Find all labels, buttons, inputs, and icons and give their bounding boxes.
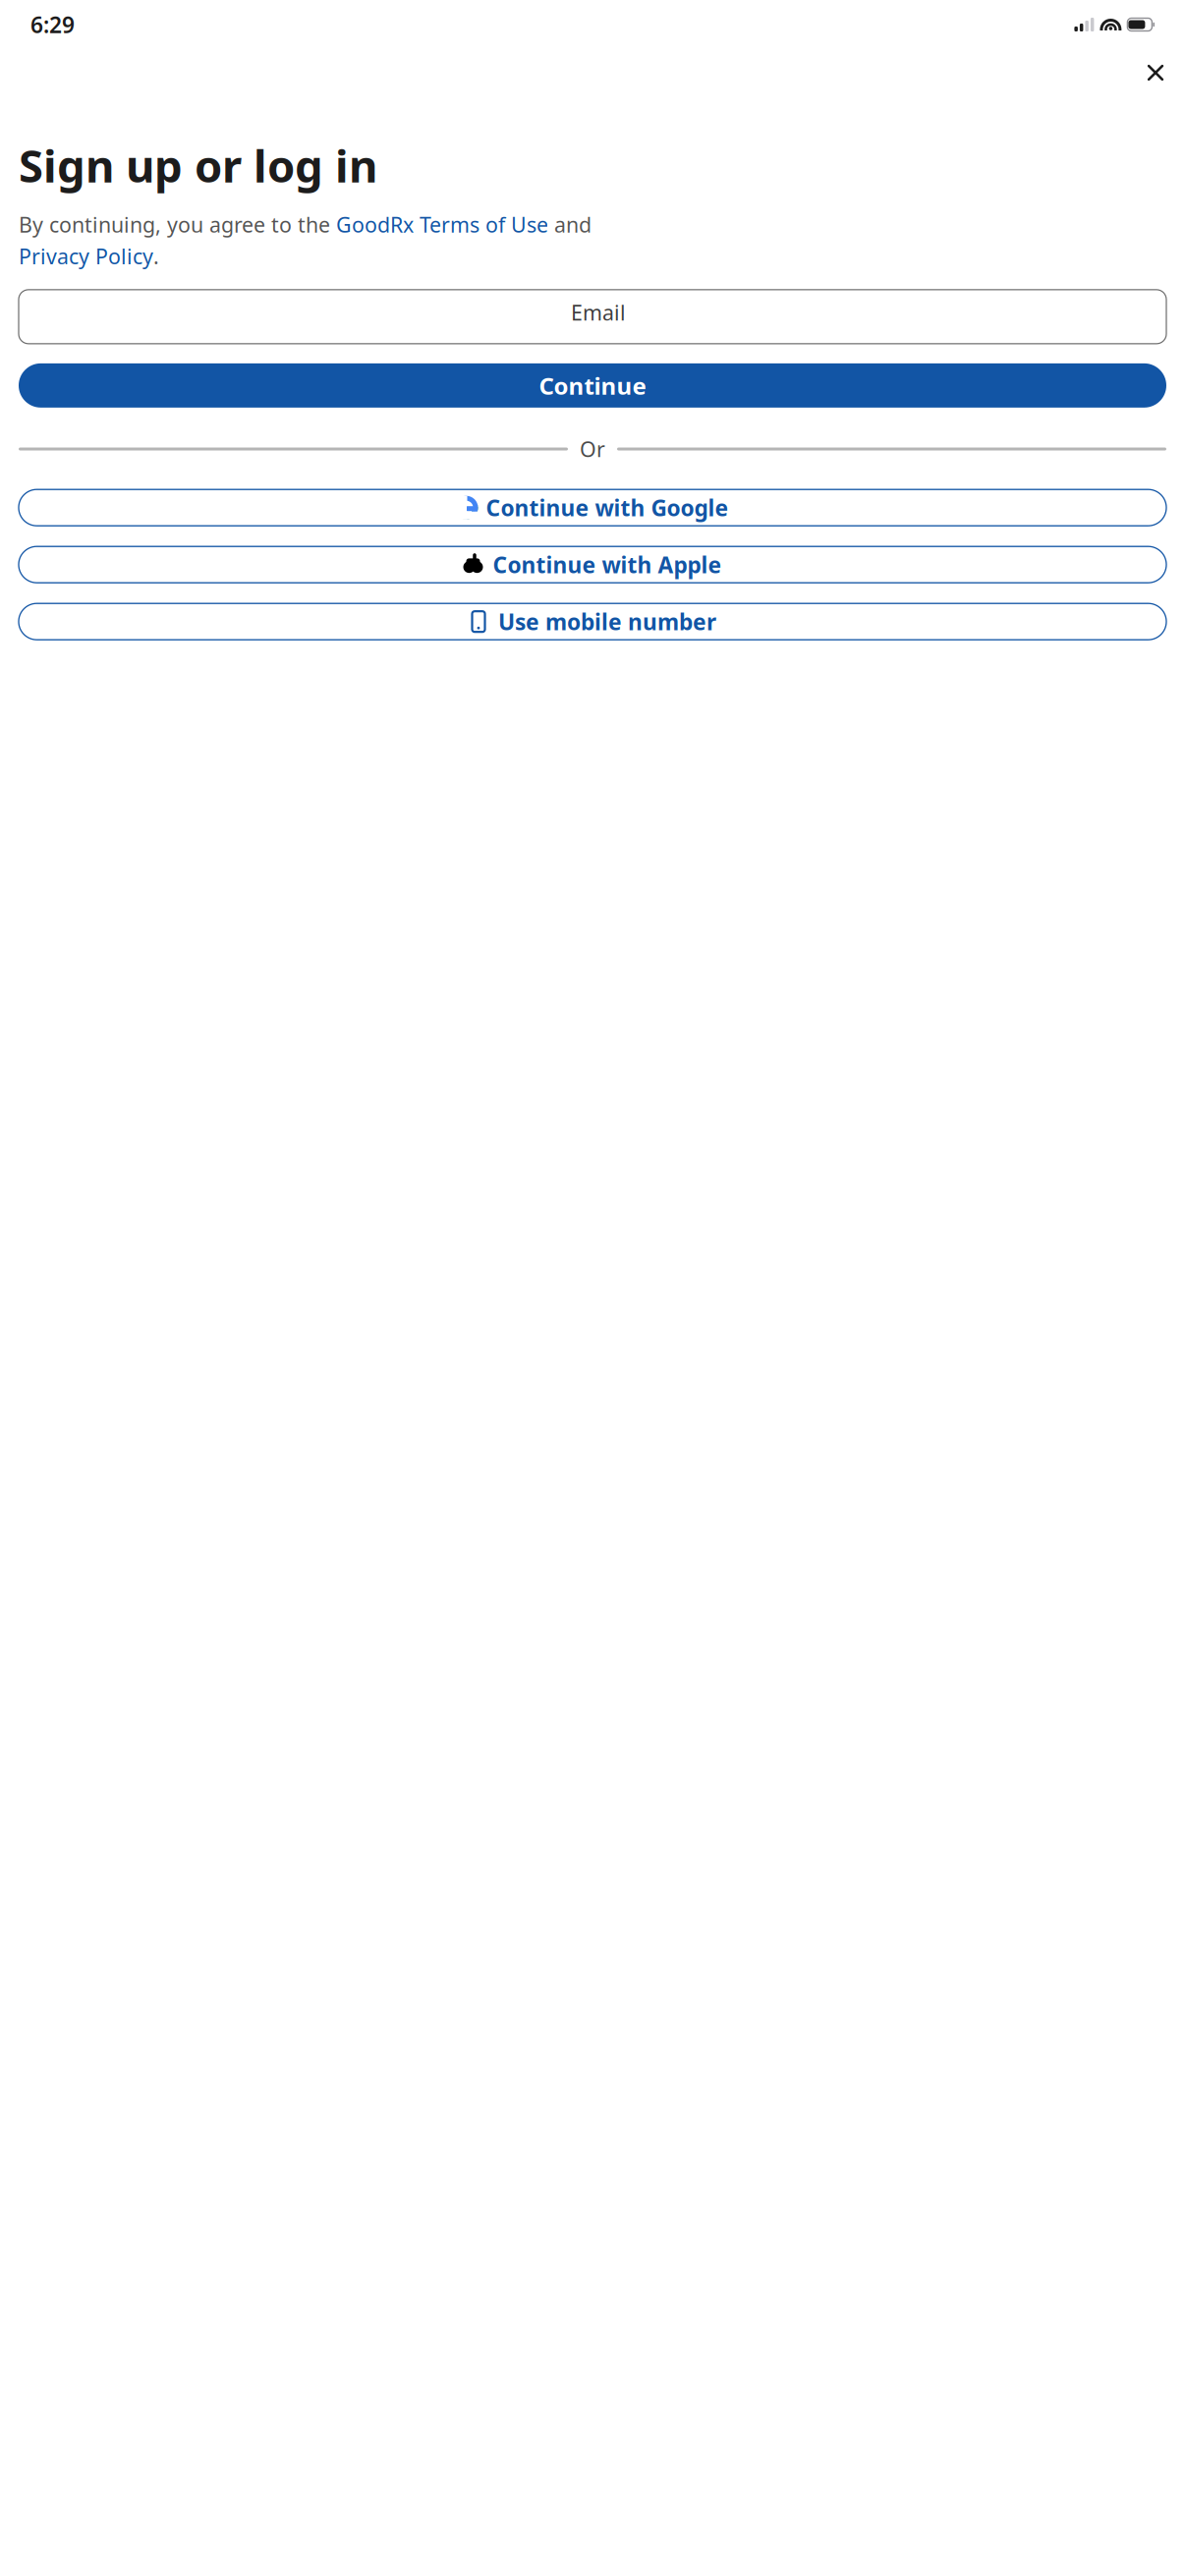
staticText: Or: [580, 435, 605, 463]
button[interactable]: Privacy Policy: [19, 242, 153, 270]
staticText: 6:29: [30, 10, 75, 39]
staticText: .: [153, 242, 159, 270]
staticText: Privacy Policy: [19, 242, 153, 270]
button[interactable]: Email: [19, 290, 1166, 344]
staticText: and: [548, 210, 592, 238]
staticText: Email: [571, 299, 626, 326]
button[interactable]: Continue with Google: [19, 489, 1166, 526]
staticText: Continue: [539, 370, 646, 401]
button[interactable]: Close: [1134, 51, 1177, 94]
staticText: GoodRx Terms of Use: [336, 210, 548, 238]
button[interactable]: Use mobile number: [19, 603, 1166, 640]
button[interactable]: Continue with Apple: [19, 546, 1166, 583]
button[interactable]: GoodRx Terms of Use: [336, 210, 548, 238]
staticText: Continue with Apple: [493, 550, 722, 579]
staticText: Continue with Google: [486, 493, 729, 522]
staticText: By continuing, you agree to the: [19, 210, 336, 238]
staticText: Sign up or log in: [19, 136, 377, 195]
button[interactable]: Continue: [19, 363, 1166, 408]
staticText: Use mobile number: [498, 607, 716, 636]
